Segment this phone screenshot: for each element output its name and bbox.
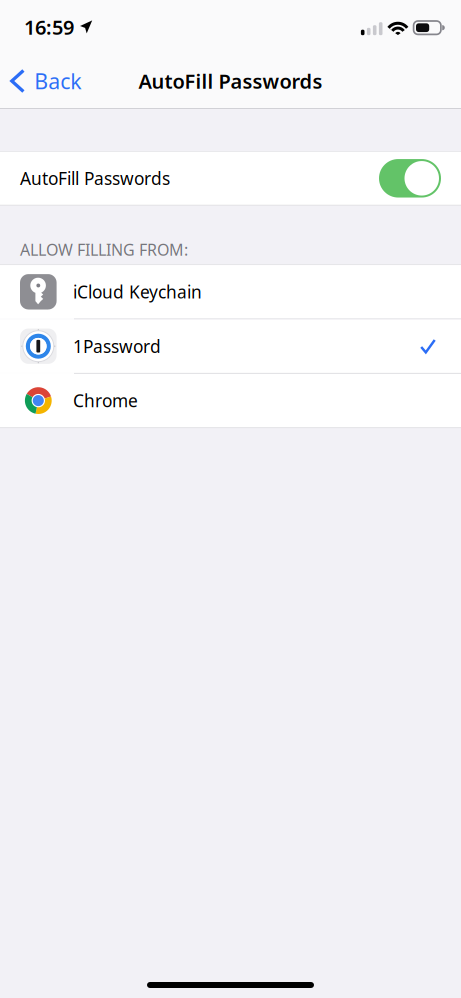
staticText: 16:59 <box>24 14 74 40</box>
staticText: Back <box>34 67 81 95</box>
staticText: iCloud Keychain <box>73 280 202 303</box>
staticText: ALLOW FILLING FROM: <box>20 239 188 260</box>
button[interactable]: AutoFill Passwords <box>0 152 461 205</box>
button[interactable]: Chrome <box>0 374 461 427</box>
staticText: 1Password <box>73 335 161 358</box>
button[interactable]: 1Password <box>0 319 461 373</box>
button[interactable]: iCloud Keychain <box>0 265 461 318</box>
staticText: AutoFill Passwords <box>20 167 170 190</box>
staticText: AutoFill Passwords <box>138 68 322 94</box>
staticText: Chrome <box>73 389 138 412</box>
button[interactable]: Back <box>0 59 95 103</box>
